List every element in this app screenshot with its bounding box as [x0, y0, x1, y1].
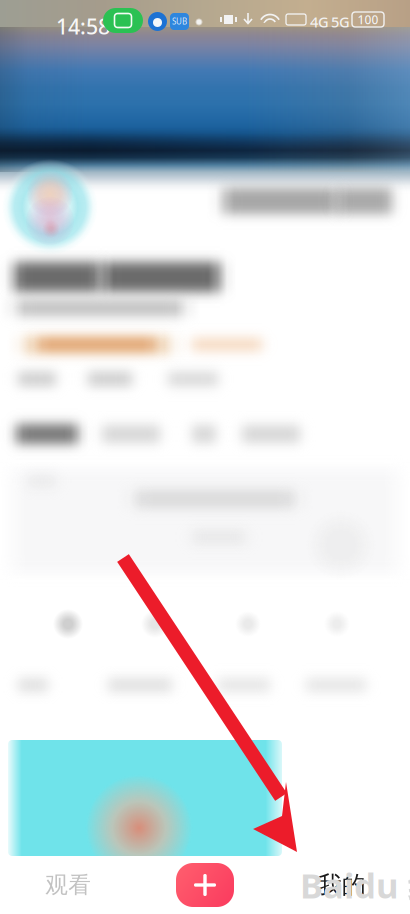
staticText: SUB: [172, 16, 187, 27]
button[interactable]: 我的: [273, 856, 410, 914]
button[interactable]: [10, 464, 400, 578]
staticText: 5G: [331, 12, 350, 31]
button[interactable]: Create: [137, 856, 273, 914]
button[interactable]: Shortcut: [135, 604, 175, 644]
staticText: 100: [357, 11, 378, 27]
staticText: 14:58: [56, 12, 110, 40]
button[interactable]: Video: [8, 740, 282, 856]
button[interactable]: Shortcut: [48, 604, 88, 644]
button[interactable]: Shortcut: [228, 604, 268, 644]
button[interactable]: Profile photo: [2, 159, 98, 255]
button[interactable]: Shortcut: [317, 604, 357, 644]
staticText: 我的: [318, 870, 366, 900]
staticText: 4G: [310, 12, 329, 31]
staticText: 观看: [45, 871, 91, 899]
staticText: Baidu 经验: [300, 862, 410, 908]
button[interactable]: 观看: [0, 856, 137, 914]
